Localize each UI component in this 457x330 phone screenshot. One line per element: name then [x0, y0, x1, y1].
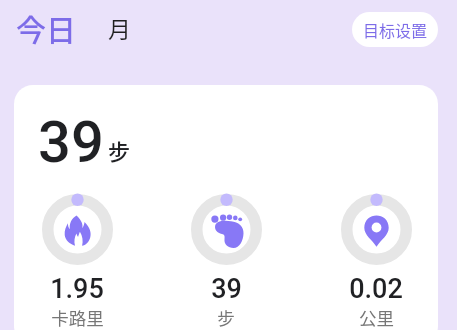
button[interactable]: Calories	[27, 194, 127, 330]
staticText: 39	[211, 273, 242, 305]
staticText: 卡路里	[51, 305, 104, 330]
staticText: 1.95	[50, 273, 104, 305]
staticText: 步	[108, 134, 131, 166]
staticText: 月	[108, 11, 131, 44]
button[interactable]: 目标设置	[352, 12, 438, 47]
staticText: 今日	[16, 6, 76, 49]
staticText: 步	[217, 305, 235, 330]
button[interactable]: Steps	[176, 194, 276, 330]
staticText: 目标设置	[363, 18, 428, 41]
staticText: 39	[38, 108, 104, 176]
button[interactable]: 月	[102, 8, 137, 47]
button[interactable]: 今日	[10, 3, 82, 52]
staticText: 0.02	[349, 273, 403, 305]
staticText: 公里	[359, 305, 394, 330]
button[interactable]: Distance	[326, 194, 426, 330]
